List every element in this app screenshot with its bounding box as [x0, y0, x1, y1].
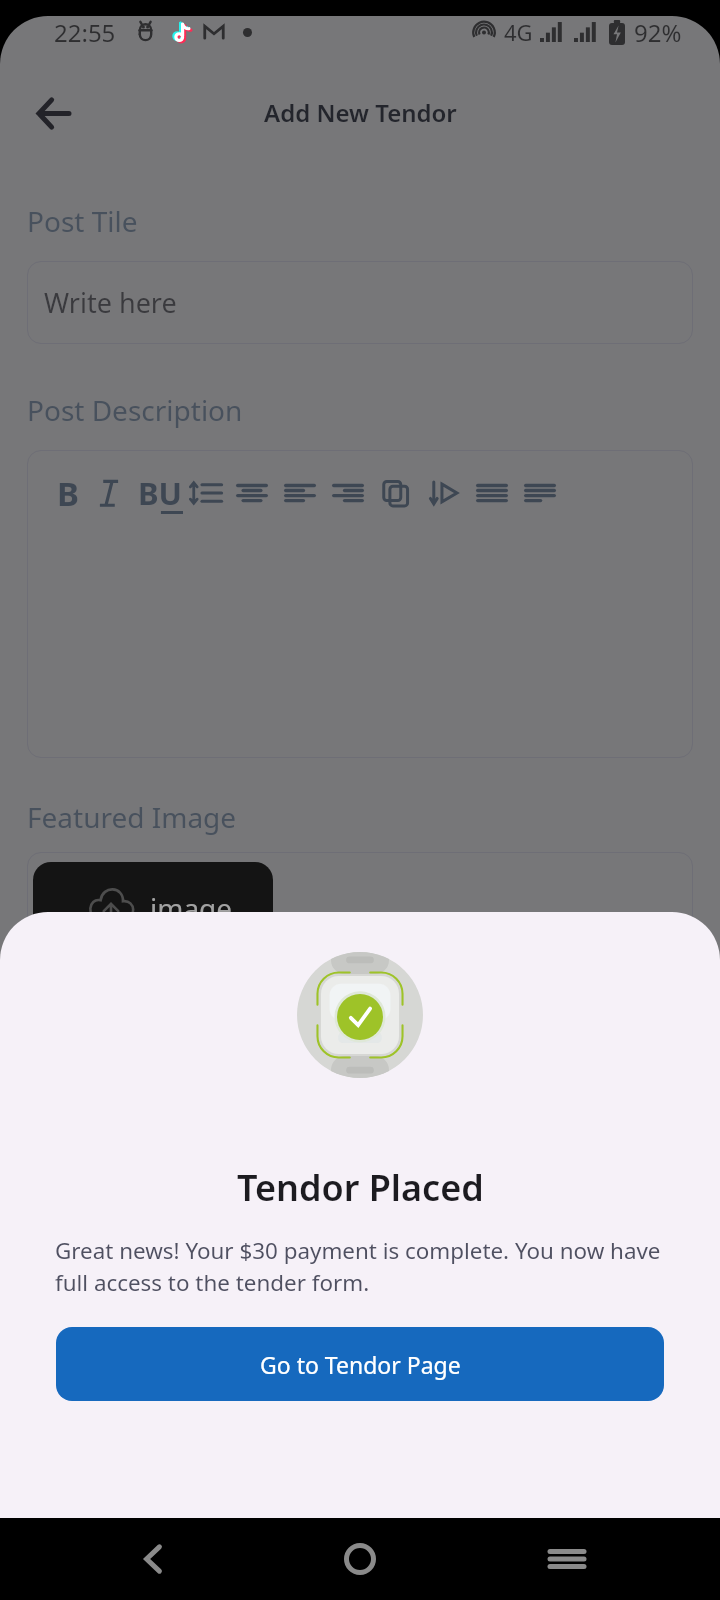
button[interactable]: Paragraph [523, 476, 557, 510]
button[interactable]: Italic [97, 476, 121, 510]
button[interactable]: B [27, 450, 693, 758]
staticText: Tendor Placed [237, 1163, 484, 1212]
button[interactable]: Back [22, 82, 84, 144]
button[interactable]: BU [137, 472, 183, 514]
button[interactable]: Back [122, 1528, 184, 1590]
button[interactable]: Copy [379, 476, 413, 510]
staticText: BU [138, 472, 183, 514]
button[interactable]: Recent apps [536, 1528, 598, 1590]
staticText: image [150, 889, 233, 927]
staticText: Post Description [27, 391, 243, 429]
button[interactable]: Home [329, 1528, 391, 1590]
staticText: Post Tile [27, 202, 138, 240]
button[interactable]: Align left [283, 476, 317, 510]
button[interactable]: Align right [331, 476, 365, 510]
button[interactable]: B [57, 471, 79, 516]
button[interactable]: image [33, 862, 273, 954]
staticText: Go to Tendor Page [260, 1349, 461, 1380]
staticText: Add New Tendor [264, 96, 457, 129]
button[interactable]: Upload featured image [27, 852, 693, 972]
button[interactable]: Go to Tendor Page [56, 1327, 664, 1401]
staticText: Featured Image [27, 798, 237, 836]
staticText: Write here [44, 284, 177, 321]
staticText: 92% [634, 16, 682, 48]
button[interactable]: Line height [189, 476, 223, 510]
button[interactable]: Align centre [235, 476, 269, 510]
staticText: 22:55 [54, 16, 116, 48]
button[interactable]: Indent [427, 476, 461, 510]
staticText: 4G [504, 17, 533, 47]
staticText: Great news! Your $30 payment is complete… [55, 1235, 675, 1298]
button[interactable]: Justify [475, 476, 509, 510]
button[interactable]: Write here [27, 261, 693, 344]
